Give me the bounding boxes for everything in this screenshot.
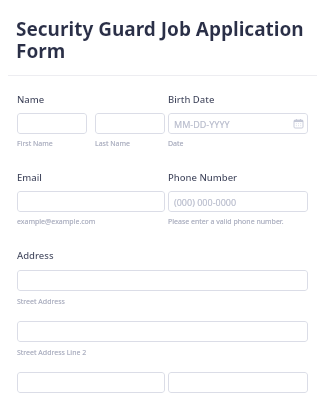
button[interactable]: City xyxy=(17,372,165,393)
button[interactable]: Last Name xyxy=(95,113,165,134)
staticText: First Name xyxy=(17,139,53,149)
staticText: MM-DD-YYYY xyxy=(174,118,230,130)
staticText: Security Guard Job Application Form xyxy=(16,16,309,64)
button[interactable]: Street Address xyxy=(17,270,308,291)
staticText: Street Address xyxy=(17,297,65,307)
button[interactable]: Phone Number xyxy=(168,191,308,212)
button[interactable]: First Name xyxy=(17,113,87,134)
staticText: Name xyxy=(17,93,45,106)
staticText: Please enter a valid phone number. xyxy=(168,217,284,227)
staticText: Last Name xyxy=(95,139,131,149)
staticText: Date xyxy=(168,139,184,149)
staticText: Phone Number xyxy=(168,171,238,184)
staticText: (000) 000-0000 xyxy=(174,196,237,208)
staticText: Birth Date xyxy=(168,93,215,106)
button[interactable]: Birth Date xyxy=(168,113,308,134)
button[interactable]: Email xyxy=(17,191,165,212)
button[interactable]: Street Address Line 2 xyxy=(17,321,308,342)
button[interactable]: State / Province xyxy=(168,372,308,393)
staticText: Email xyxy=(17,171,42,184)
staticText: example@example.com xyxy=(17,217,96,227)
staticText: Street Address Line 2 xyxy=(17,348,87,358)
staticText: Address xyxy=(17,249,54,262)
